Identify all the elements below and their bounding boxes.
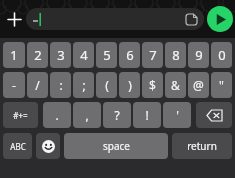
- button[interactable]: ?: [103, 102, 131, 128]
- staticText: -: [12, 77, 16, 93]
- staticText: space: [103, 139, 130, 153]
- button[interactable]: ABC: [3, 133, 32, 159]
- button[interactable]: Stickers: [26, 8, 204, 30]
- staticText: #+=: [13, 110, 28, 121]
- button[interactable]: .: [43, 102, 71, 128]
- staticText: /: [35, 77, 40, 93]
- button[interactable]: (: [96, 72, 117, 98]
- button[interactable]: #+=: [3, 102, 38, 128]
- staticText: .: [55, 107, 59, 123]
- staticText: ): [128, 77, 132, 93]
- staticText: $: [149, 77, 156, 93]
- button[interactable]: Emoji: [36, 133, 60, 159]
- button[interactable]: Send: [207, 6, 233, 32]
- button[interactable]: ): [119, 72, 140, 98]
- staticText: @: [193, 77, 204, 93]
- staticText: ?: [114, 107, 120, 123]
- button[interactable]: 9: [188, 42, 209, 68]
- button[interactable]: $: [142, 72, 163, 98]
- button[interactable]: 6: [119, 42, 140, 68]
- button[interactable]: @: [188, 72, 209, 98]
- staticText: 7: [149, 46, 157, 64]
- staticText: 9: [195, 46, 203, 64]
- staticText: :: [59, 77, 63, 93]
- button[interactable]: 1: [3, 42, 25, 68]
- staticText: 5: [103, 46, 111, 64]
- button[interactable]: 4: [73, 42, 94, 68]
- button[interactable]: 0: [211, 42, 232, 68]
- button[interactable]: !: [133, 102, 161, 128]
- button[interactable]: 8: [165, 42, 186, 68]
- staticText: 3: [57, 46, 65, 64]
- staticText: return: [187, 139, 217, 153]
- button[interactable]: space: [64, 133, 168, 159]
- button[interactable]: 7: [142, 42, 163, 68]
- staticText: 8: [172, 46, 180, 64]
- staticText: 4: [80, 46, 88, 64]
- button[interactable]: ': [163, 102, 191, 128]
- button[interactable]: :: [50, 72, 71, 98]
- staticText: ,: [85, 107, 89, 123]
- staticText: ": [219, 77, 224, 93]
- button[interactable]: return: [172, 133, 232, 159]
- staticText: ABC: [10, 141, 26, 152]
- button[interactable]: 2: [27, 42, 48, 68]
- staticText: 6: [126, 46, 134, 64]
- button[interactable]: &: [165, 72, 186, 98]
- staticText: &: [171, 77, 180, 93]
- staticText: !: [145, 107, 149, 123]
- button[interactable]: ": [211, 72, 232, 98]
- staticText: ': [176, 107, 179, 123]
- staticText: 0: [218, 46, 226, 64]
- staticText: (: [105, 77, 109, 93]
- button[interactable]: Attach: [2, 7, 26, 31]
- staticText: 1: [10, 46, 18, 64]
- button[interactable]: Stickers: [182, 10, 200, 28]
- button[interactable]: 5: [96, 42, 117, 68]
- button[interactable]: Backspace: [196, 102, 232, 128]
- button[interactable]: -: [3, 72, 25, 98]
- button[interactable]: ;: [73, 72, 94, 98]
- button[interactable]: ,: [73, 102, 101, 128]
- staticText: ;: [82, 77, 86, 93]
- button[interactable]: 3: [50, 42, 71, 68]
- button[interactable]: /: [27, 72, 48, 98]
- staticText: 2: [34, 46, 42, 64]
